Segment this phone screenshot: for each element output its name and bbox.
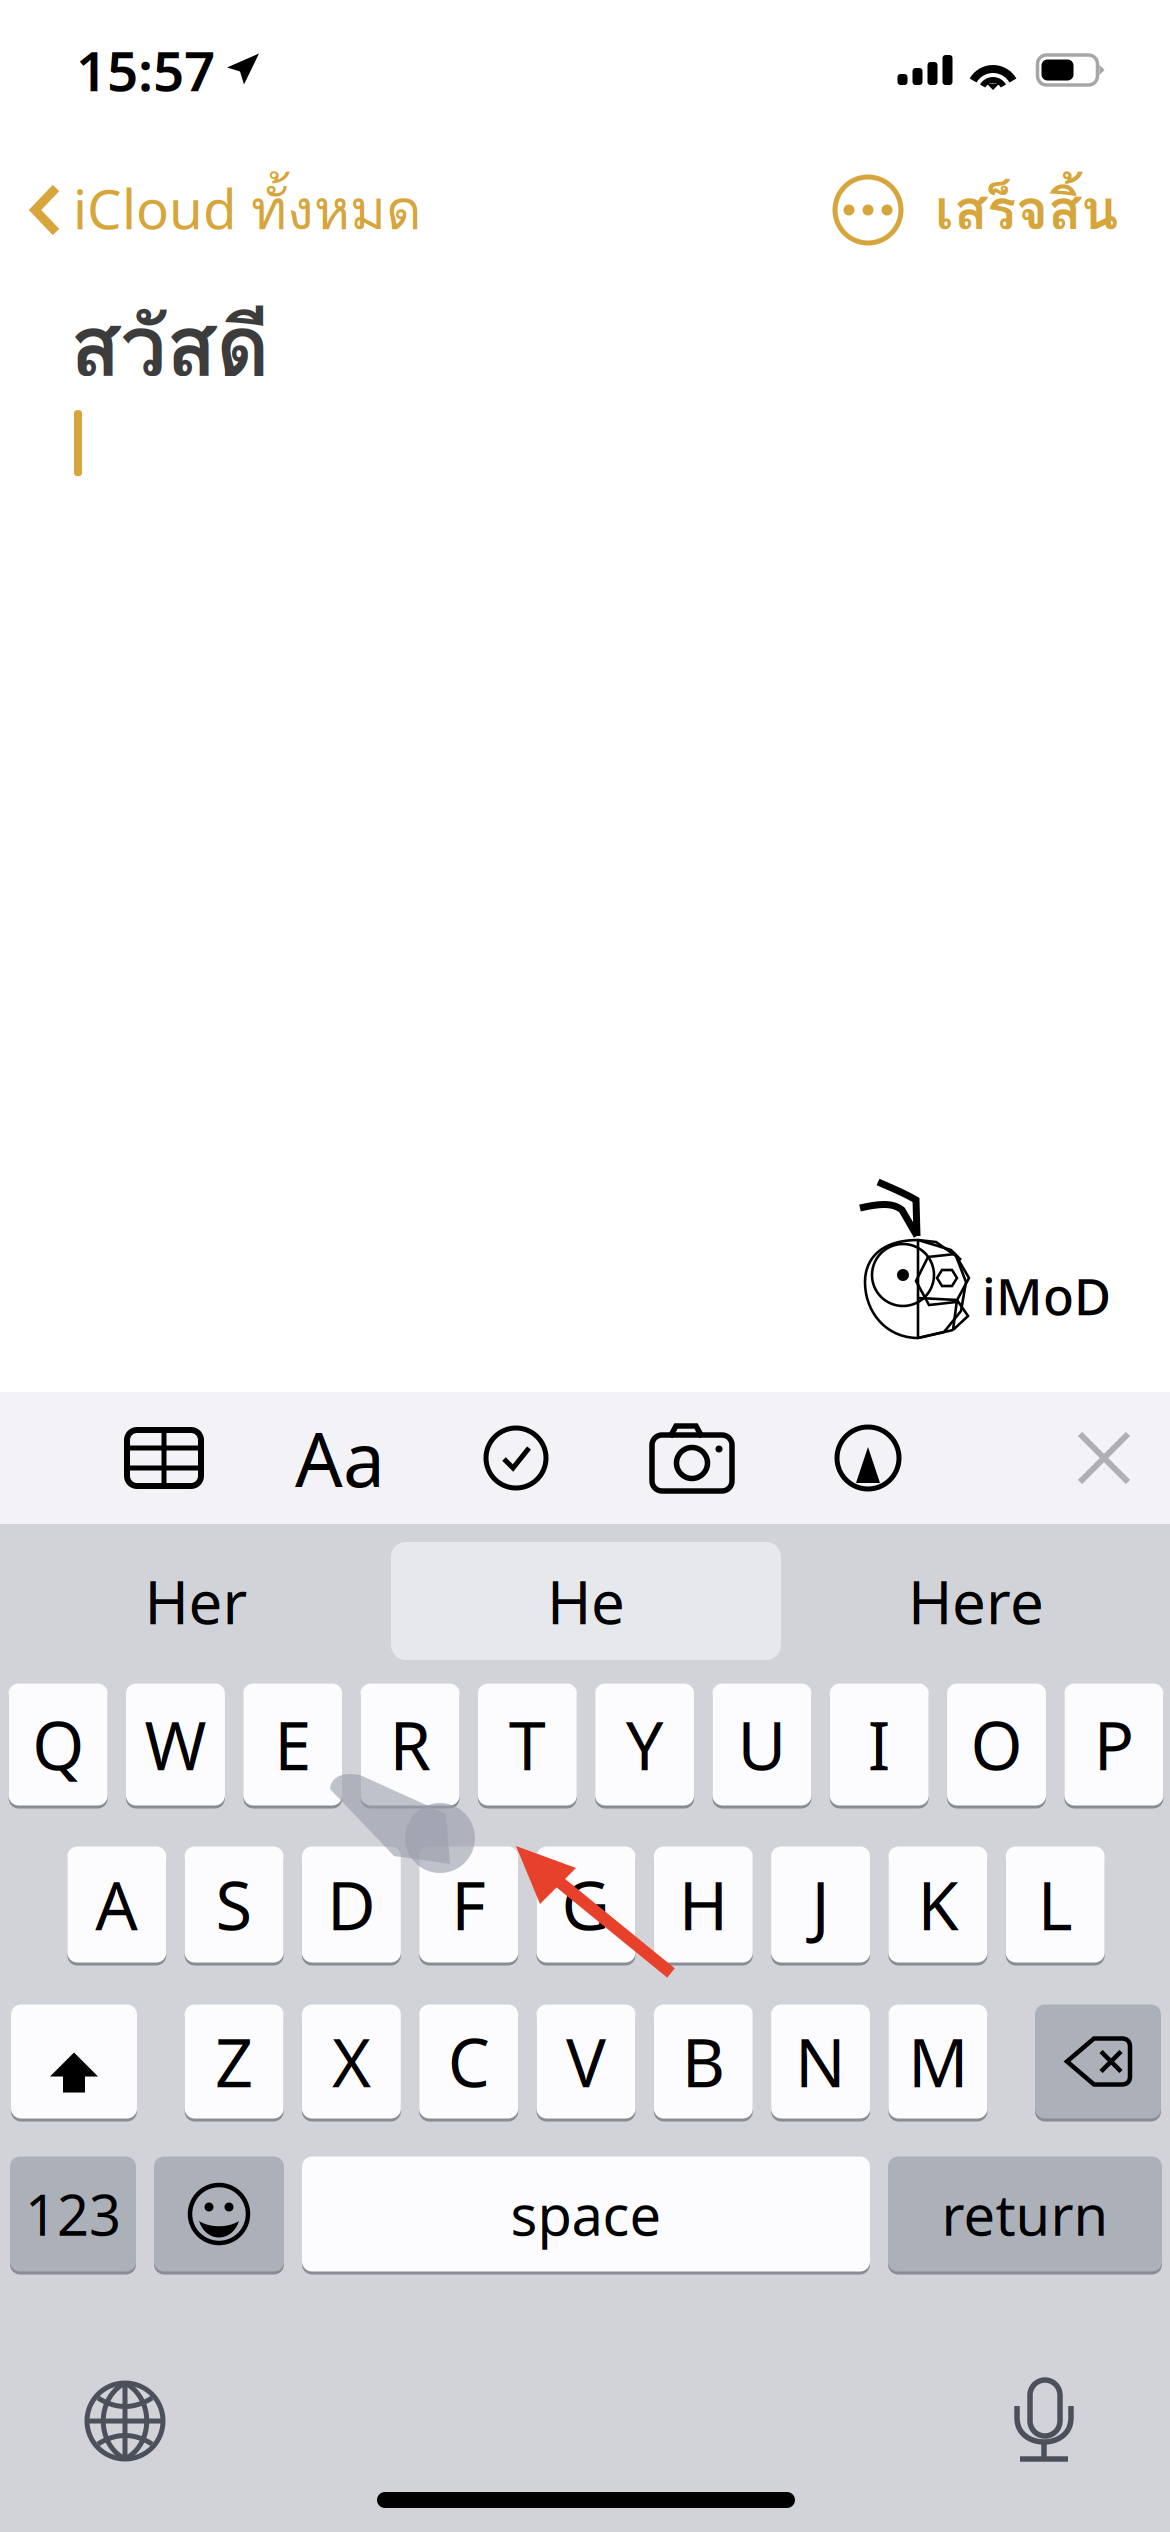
button[interactable]: S — [185, 1845, 284, 1964]
button[interactable]: N — [771, 2003, 870, 2120]
button[interactable]: O — [947, 1682, 1046, 1807]
staticText: F — [451, 1860, 486, 1949]
staticText: return — [941, 2177, 1108, 2251]
staticText: B — [682, 2017, 725, 2106]
button[interactable]: J — [771, 1845, 870, 1964]
staticText: Here — [908, 1561, 1044, 1641]
staticText: J — [812, 1860, 830, 1949]
staticText: N — [795, 2017, 846, 2106]
staticText: space — [510, 2177, 661, 2251]
button[interactable]: F — [419, 1845, 518, 1964]
staticText: 123 — [25, 2177, 121, 2251]
button[interactable]: Close — [1045, 1392, 1163, 1524]
staticText: R — [389, 1700, 430, 1789]
button[interactable]: Here — [781, 1542, 1170, 1660]
staticText: H — [679, 1860, 728, 1949]
staticText: Q — [32, 1700, 84, 1789]
button[interactable]: Q — [9, 1682, 108, 1807]
button[interactable]: Next keyboard — [67, 2363, 183, 2479]
button[interactable]: Her — [1, 1542, 391, 1660]
button[interactable]: D — [302, 1845, 401, 1964]
staticText: V — [566, 2017, 606, 2106]
button[interactable]: return — [888, 2155, 1162, 2273]
staticText: M — [908, 2017, 968, 2106]
staticText: C — [448, 2017, 490, 2106]
button[interactable]: X — [302, 2003, 401, 2120]
button[interactable]: Aa — [252, 1392, 428, 1524]
button[interactable]: A — [67, 1845, 166, 1964]
button[interactable]: G — [536, 1845, 635, 1964]
staticText: สวัสดี — [70, 282, 270, 410]
staticText: E — [274, 1700, 311, 1789]
staticText: iMoD — [982, 1262, 1111, 1329]
button[interactable]: Delete — [1035, 2003, 1161, 2120]
staticText: L — [1038, 1860, 1073, 1949]
button[interactable]: K — [888, 1845, 987, 1964]
button[interactable]: More — [823, 165, 913, 255]
button[interactable]: Camera — [604, 1392, 780, 1524]
button[interactable]: Dictate — [997, 2360, 1093, 2482]
button[interactable]: 123 — [10, 2155, 136, 2273]
staticText: S — [216, 1860, 253, 1949]
button[interactable]: เสร็จสิ้น — [913, 158, 1140, 262]
button[interactable]: V — [536, 2003, 635, 2120]
staticText: I — [868, 1700, 891, 1789]
button[interactable]: P — [1064, 1682, 1163, 1807]
button[interactable]: L — [1006, 1845, 1105, 1964]
button[interactable]: He — [391, 1542, 781, 1660]
button[interactable]: W — [126, 1682, 225, 1807]
button[interactable]: Z — [185, 2003, 284, 2120]
button[interactable]: T — [478, 1682, 577, 1807]
button[interactable]: U — [712, 1682, 811, 1807]
staticText: Y — [626, 1700, 664, 1789]
staticText: U — [737, 1700, 786, 1789]
staticText: D — [327, 1860, 376, 1949]
staticText: O — [970, 1700, 1022, 1789]
staticText: P — [1094, 1700, 1134, 1789]
button[interactable]: Table — [76, 1392, 252, 1524]
staticText: He — [547, 1561, 625, 1641]
button[interactable]: E — [243, 1682, 342, 1807]
button[interactable]: C — [419, 2003, 518, 2120]
button[interactable]: iCloud ทั้งหมด — [0, 158, 422, 262]
staticText: T — [509, 1700, 546, 1789]
staticText: เสร็จสิ้น — [935, 168, 1118, 252]
button[interactable]: Checklist — [428, 1392, 604, 1524]
staticText: W — [144, 1700, 206, 1789]
staticText: G — [561, 1860, 610, 1949]
staticText: Aa — [295, 1408, 385, 1508]
staticText: A — [95, 1860, 138, 1949]
button[interactable]: Markup — [780, 1392, 956, 1524]
staticText: iCloud ทั้งหมด — [73, 168, 422, 252]
staticText: Her — [144, 1561, 247, 1641]
button[interactable]: M — [888, 2003, 987, 2120]
staticText: 15:57 — [76, 34, 215, 106]
button[interactable]: H — [654, 1845, 753, 1964]
button[interactable]: Emoji — [154, 2155, 284, 2273]
button[interactable]: R — [360, 1682, 459, 1807]
button[interactable]: space — [302, 2155, 870, 2273]
button[interactable]: I — [830, 1682, 929, 1807]
button[interactable]: Y — [595, 1682, 694, 1807]
staticText: Z — [215, 2017, 253, 2106]
staticText: K — [917, 1860, 958, 1949]
staticText: X — [332, 2017, 371, 2106]
button[interactable]: B — [654, 2003, 753, 2120]
button[interactable]: Shift — [11, 2003, 137, 2120]
